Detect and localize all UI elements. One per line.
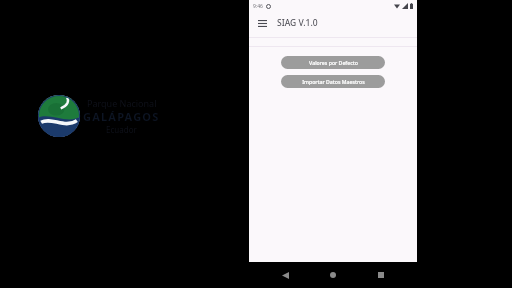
button[interactable]: Home (321, 263, 345, 287)
button[interactable]: Recent apps (369, 263, 393, 287)
button[interactable]: Open navigation menu (254, 15, 270, 31)
staticText: SIAG V.1.0 (277, 17, 318, 29)
staticText: Importar Datos Maestros (302, 78, 365, 85)
staticText: Valores por Defecto (309, 59, 358, 66)
staticText: GALÁPAGOS (83, 109, 160, 124)
staticText: Ecuador (106, 124, 137, 135)
staticText: Parque Nacional (87, 97, 157, 109)
button[interactable]: Importar Datos Maestros (281, 75, 385, 88)
staticText: 9:46 (253, 3, 263, 10)
button[interactable]: Valores por Defecto (281, 56, 385, 69)
button[interactable]: Back (273, 263, 297, 287)
